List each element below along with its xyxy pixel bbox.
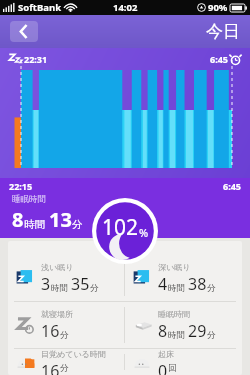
button[interactable]: 深い眠り (125, 255, 242, 301)
staticText: 時間 (168, 330, 185, 341)
staticText: 回 (168, 363, 177, 374)
staticText: 分 (72, 218, 83, 231)
staticText: 6:45 (210, 53, 228, 65)
button[interactable]: 睡眠時間 (125, 302, 242, 348)
staticText: 起床 (158, 349, 174, 359)
staticText: 睡眠時間 (12, 194, 46, 205)
staticText: 102 (102, 213, 139, 242)
staticText: 38 (188, 273, 207, 295)
staticText: 3 (41, 273, 51, 295)
staticText: 4 (158, 273, 168, 295)
staticText: 6:45 (223, 180, 241, 192)
staticText: 分 (90, 283, 99, 294)
staticText: 分 (207, 330, 216, 341)
staticText: 分 (60, 363, 69, 374)
button[interactable]: 浅い眠り (8, 255, 124, 301)
staticText: 22:15 (9, 180, 33, 192)
button[interactable]: Sleep score 102 percent (92, 198, 158, 264)
staticText: 今日 (206, 21, 240, 42)
button[interactable]: 目覚めている時間 (8, 349, 124, 375)
staticText: 16 (41, 320, 60, 342)
staticText: 浅い眠り (41, 262, 74, 272)
staticText: 8 (12, 206, 24, 233)
staticText: 13 (49, 206, 72, 233)
staticText: 深い眠り (158, 262, 191, 272)
staticText: 分 (207, 283, 216, 294)
staticText: 90% (208, 1, 228, 14)
staticText: 時間 (51, 283, 68, 294)
staticText: 分 (60, 330, 69, 341)
staticText: SoftBank (18, 1, 62, 14)
button[interactable]: Back (10, 21, 38, 42)
staticText: 時間 (24, 218, 45, 231)
staticText: 35 (71, 273, 90, 295)
staticText: 目覚めている時間 (41, 349, 106, 359)
staticText: 16 (41, 360, 60, 375)
staticText: 29 (188, 320, 207, 342)
staticText: 睡眠時間 (158, 309, 190, 319)
staticText: 時間 (168, 283, 185, 294)
staticText: % (139, 225, 149, 240)
button[interactable]: 就寝場所 (8, 302, 124, 348)
staticText: 22:31 (24, 53, 48, 65)
button[interactable]: 起床 (125, 349, 242, 375)
staticText: 14:02 (113, 1, 138, 14)
staticText: 0 (158, 360, 168, 375)
staticText: 8 (158, 320, 168, 342)
staticText: 就寝場所 (41, 309, 73, 319)
